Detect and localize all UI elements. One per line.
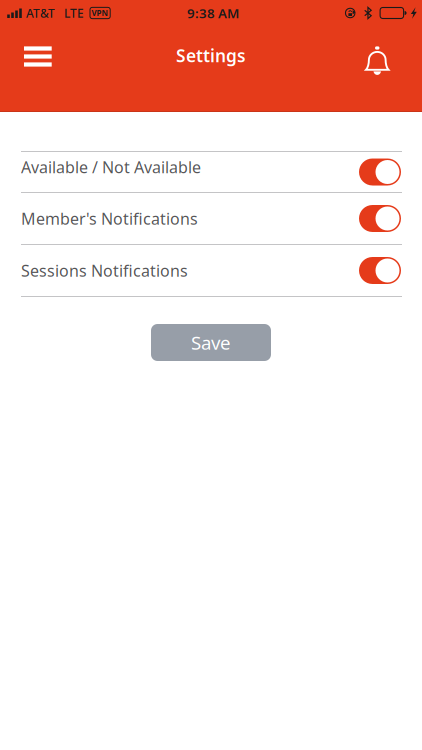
staticText: Member's Notifications <box>21 208 198 229</box>
button[interactable]: Sessions Notifications <box>0 245 422 297</box>
button[interactable]: Save <box>151 324 271 361</box>
staticText: Settings <box>176 44 246 67</box>
staticText: Available / Not Available <box>21 156 201 178</box>
button[interactable]: Available / Not Available <box>0 152 422 193</box>
staticText: LTE <box>64 5 84 21</box>
staticText: Save <box>191 330 231 355</box>
button[interactable]: Menu <box>0 37 70 80</box>
staticText: VPN <box>92 8 109 18</box>
button[interactable]: Notifications <box>346 35 422 82</box>
button[interactable]: Member's Notifications <box>0 193 422 245</box>
staticText: 9:38 AM <box>187 4 239 22</box>
staticText: AT&T <box>26 5 55 21</box>
staticText: Sessions Notifications <box>21 260 188 281</box>
